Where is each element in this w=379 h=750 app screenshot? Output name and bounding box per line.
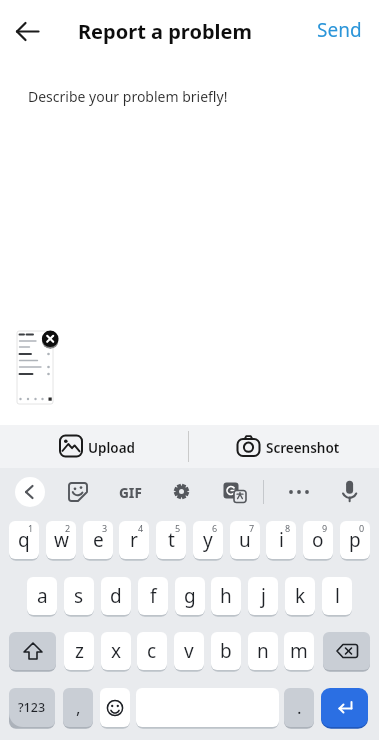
- button[interactable]: [100, 688, 130, 727]
- button[interactable]: ,: [63, 688, 93, 727]
- button[interactable]: s: [64, 577, 94, 615]
- staticText: ?123: [18, 699, 46, 716]
- button[interactable]: h: [211, 577, 241, 615]
- staticText: j: [261, 583, 266, 609]
- staticText: g: [184, 583, 196, 609]
- button[interactable]: [66, 480, 90, 504]
- staticText: 4: [138, 522, 144, 534]
- button[interactable]: GIF: [119, 484, 142, 502]
- staticText: Describe your problem briefly!: [28, 87, 228, 106]
- button[interactable]: [340, 479, 360, 504]
- button[interactable]: g: [175, 577, 205, 615]
- button[interactable]: p: [340, 521, 370, 559]
- button[interactable]: l: [322, 577, 352, 615]
- button[interactable]: k: [285, 577, 315, 615]
- staticText: z: [75, 638, 84, 664]
- button[interactable]: i: [266, 521, 296, 559]
- button[interactable]: y: [193, 521, 223, 559]
- staticText: 5: [175, 522, 181, 534]
- staticText: f: [150, 583, 157, 609]
- staticText: Screenshot: [266, 439, 340, 457]
- staticText: v: [184, 638, 194, 664]
- button[interactable]: z: [64, 632, 94, 670]
- staticText: .: [297, 696, 302, 719]
- staticText: q: [18, 527, 30, 553]
- staticText: ,: [76, 696, 81, 719]
- button[interactable]: j: [248, 577, 278, 615]
- button[interactable]: o: [303, 521, 333, 559]
- staticText: m: [290, 638, 308, 664]
- button[interactable]: m: [284, 632, 314, 670]
- staticText: d: [110, 583, 122, 609]
- staticText: s: [74, 583, 84, 609]
- staticText: t: [168, 527, 175, 553]
- button[interactable]: Upload: [40, 427, 180, 466]
- button[interactable]: [321, 688, 368, 727]
- staticText: n: [257, 638, 269, 664]
- button[interactable]: [171, 481, 192, 502]
- staticText: 9: [322, 522, 328, 534]
- staticText: i: [279, 527, 284, 553]
- button[interactable]: ?123: [9, 688, 55, 727]
- button[interactable]: [323, 632, 370, 670]
- staticText: Upload: [88, 439, 136, 457]
- staticText: k: [295, 583, 306, 609]
- button[interactable]: Screenshot: [225, 427, 355, 466]
- button[interactable]: f: [138, 577, 168, 615]
- staticText: y: [203, 527, 213, 553]
- staticText: 1: [28, 522, 34, 534]
- button[interactable]: [9, 632, 56, 670]
- staticText: x: [111, 638, 122, 664]
- staticText: 7: [249, 522, 255, 534]
- button[interactable]: u: [230, 521, 260, 559]
- staticText: u: [239, 527, 251, 553]
- staticText: o: [312, 527, 324, 553]
- staticText: 8: [285, 522, 291, 534]
- button[interactable]: x: [101, 632, 131, 670]
- staticText: 3: [102, 522, 108, 534]
- button[interactable]: Send: [308, 14, 370, 46]
- button[interactable]: r: [119, 521, 149, 559]
- staticText: l: [335, 583, 340, 609]
- button[interactable]: e: [83, 521, 113, 559]
- staticText: 2: [65, 522, 71, 534]
- button[interactable]: q: [9, 521, 39, 559]
- staticText: c: [147, 638, 157, 664]
- staticText: h: [220, 583, 232, 609]
- button[interactable]: [10, 16, 46, 46]
- button[interactable]: d: [101, 577, 131, 615]
- button[interactable]: [15, 477, 45, 507]
- button[interactable]: t: [156, 521, 186, 559]
- staticText: a: [37, 583, 48, 609]
- staticText: Report a problem: [78, 18, 252, 45]
- staticText: r: [130, 527, 138, 553]
- button[interactable]: w: [46, 521, 76, 559]
- button[interactable]: .: [284, 688, 314, 727]
- staticText: p: [349, 527, 361, 553]
- staticText: Send: [317, 17, 362, 43]
- staticText: 6: [212, 522, 218, 534]
- button[interactable]: c: [137, 632, 167, 670]
- button[interactable]: v: [174, 632, 204, 670]
- button[interactable]: b: [211, 632, 241, 670]
- button[interactable]: n: [248, 632, 278, 670]
- staticText: w: [54, 527, 69, 553]
- button[interactable]: [222, 481, 248, 504]
- staticText: e: [93, 527, 104, 553]
- button[interactable]: a: [27, 577, 57, 615]
- button[interactable]: [287, 484, 311, 500]
- button[interactable]: [41, 330, 60, 349]
- staticText: b: [220, 638, 232, 664]
- staticText: 0: [359, 522, 365, 534]
